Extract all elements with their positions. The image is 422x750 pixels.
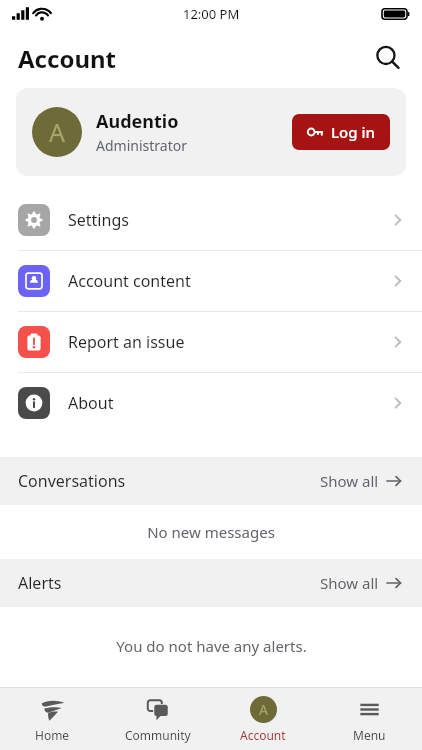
staticText: Audentio	[96, 109, 179, 134]
button[interactable]: Show all	[316, 467, 406, 495]
staticText: Conversations	[18, 470, 126, 492]
button[interactable]: Home	[0, 690, 105, 749]
button[interactable]: Report an issue	[0, 312, 422, 372]
staticText: Community	[125, 727, 191, 743]
button[interactable]: Menu	[316, 690, 422, 749]
button[interactable]: Settings	[0, 190, 422, 250]
staticText: Account content	[68, 270, 191, 292]
button[interactable]: About	[0, 373, 422, 433]
staticText: You do not have any alerts.	[116, 636, 307, 656]
staticText: Report an issue	[68, 331, 185, 353]
staticText: 12:00 PM	[183, 5, 240, 23]
staticText: Account	[18, 42, 116, 75]
button[interactable]: Search	[366, 36, 410, 80]
button[interactable]: A	[210, 690, 316, 749]
staticText: Show all	[320, 573, 379, 593]
staticText: About	[68, 392, 114, 414]
staticText: Show all	[320, 471, 379, 491]
staticText: Alerts	[18, 572, 62, 594]
staticText: Account	[240, 727, 286, 743]
staticText: Home	[35, 727, 70, 743]
staticText: A	[49, 115, 65, 149]
staticText: Administrator	[96, 136, 187, 155]
button[interactable]: Community	[105, 690, 210, 749]
staticText: Settings	[68, 209, 129, 231]
button[interactable]: Account content	[0, 251, 422, 311]
button[interactable]: Log in	[292, 114, 390, 150]
staticText: Menu	[353, 727, 386, 743]
staticText: Log in	[331, 122, 375, 142]
staticText: A	[259, 700, 268, 719]
button[interactable]: A	[16, 88, 406, 176]
button[interactable]: Show all	[316, 569, 406, 597]
staticText: No new messages	[147, 522, 275, 542]
